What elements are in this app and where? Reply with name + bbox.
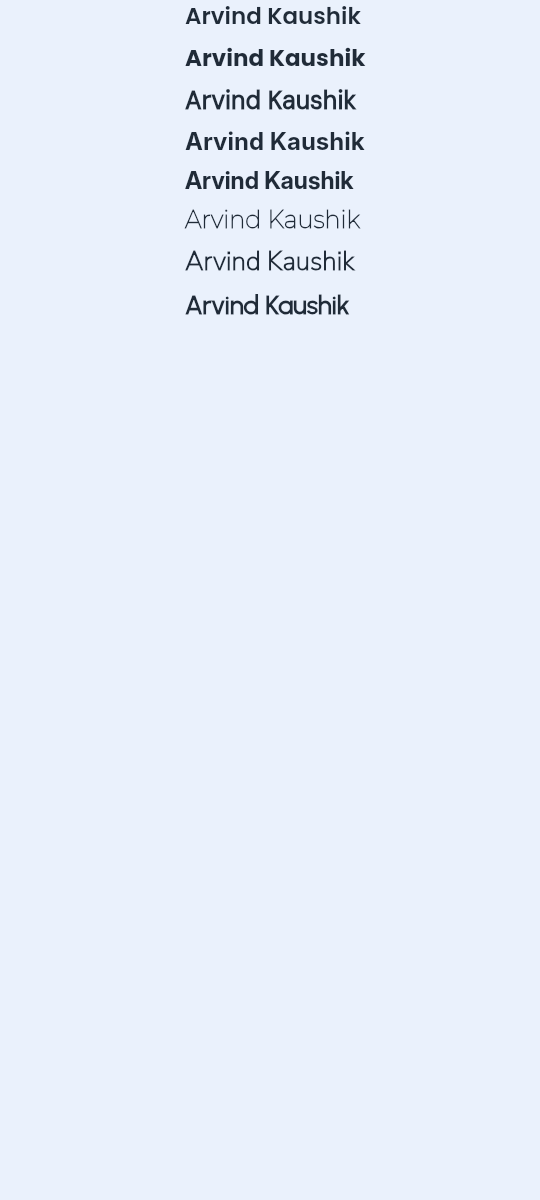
- staticText: Arvind Kaushik: [185, 289, 350, 320]
- staticText: Arvind Kaushik: [185, 127, 365, 156]
- staticText: Arvind Kaushik: [185, 166, 354, 195]
- staticText: Arvind Kaushik: [185, 205, 361, 234]
- staticText: Arvind Kaushik: [185, 0, 361, 32]
- staticText: Arvind Kaushik: [185, 42, 366, 74]
- staticText: Arvind Kaushik: [185, 244, 355, 279]
- staticText: Arvind Kaushik: [185, 84, 357, 117]
